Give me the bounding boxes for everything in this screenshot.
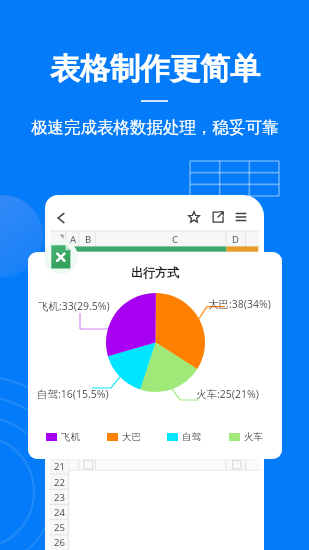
staticText: 23 (54, 491, 65, 504)
staticText: D (232, 233, 239, 246)
staticText: 飞机 (61, 431, 80, 443)
staticText: 24 (54, 506, 65, 519)
staticText: 22 (54, 476, 65, 489)
button[interactable]: 自驾 (167, 431, 201, 443)
button[interactable]: Share (207, 206, 229, 228)
button[interactable]: 大巴 (107, 431, 141, 443)
button[interactable]: 飞机 (46, 431, 80, 443)
staticText: 26 (54, 536, 65, 549)
staticText: 大巴 (122, 431, 141, 443)
staticText: C (172, 233, 179, 246)
button[interactable]: Menu (230, 206, 252, 228)
staticText: 25 (54, 521, 65, 534)
staticText: 自驾:16(15.5%) (37, 387, 109, 401)
button[interactable]: Favorite (183, 206, 205, 228)
staticText: 21 (54, 460, 65, 473)
staticText: A (70, 233, 77, 246)
staticText: 出行方式 (131, 265, 179, 280)
staticText: 极速完成表格数据处理，稳妥可靠 (31, 117, 279, 138)
staticText: 大巴:38(34%) (208, 297, 271, 311)
staticText: 自驾 (182, 431, 201, 443)
staticText: 飞机:33(29.5%) (38, 299, 110, 313)
staticText: B (85, 233, 92, 246)
staticText: 表格制作更简单 (50, 50, 260, 88)
staticText: 火车:25(21%) (196, 387, 259, 401)
button[interactable]: 火车 (229, 431, 263, 443)
button[interactable]: Back (50, 207, 72, 229)
staticText: 火车 (244, 431, 263, 443)
